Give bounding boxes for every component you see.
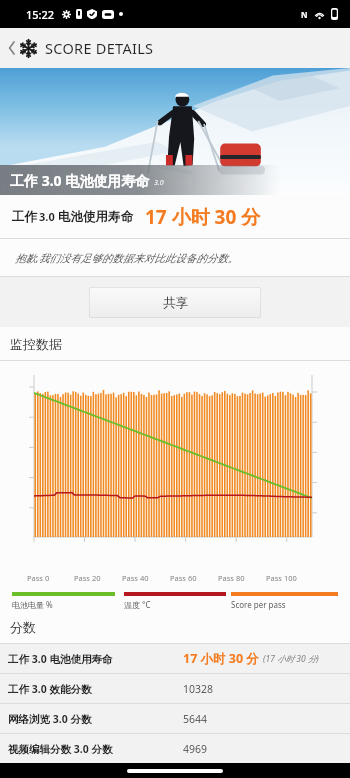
- staticText: Pass 100: [266, 573, 297, 583]
- staticText: Pass 60: [170, 573, 197, 583]
- staticText: 15:22: [26, 7, 55, 22]
- button[interactable]: Back: [4, 34, 158, 62]
- button[interactable]: 网络浏览 3.0 分数: [0, 704, 350, 733]
- staticText: 17 小时 30 分: [145, 204, 261, 230]
- staticText: (17 小时 30 分): [263, 653, 319, 665]
- staticText: 17 小时 30 分: [183, 650, 259, 667]
- button[interactable]: 共享: [89, 287, 261, 318]
- staticText: 工作 3.0 电池使用寿命: [8, 652, 183, 666]
- staticText: Pass 80: [218, 573, 245, 583]
- staticText: 工作 3.0 电池使用寿命: [10, 171, 150, 190]
- staticText: 工作 3.0 效能分数: [8, 682, 183, 696]
- staticText: Pass 20: [74, 573, 101, 583]
- staticText: 工作: [12, 209, 37, 225]
- staticText: 共享: [163, 295, 188, 311]
- staticText: 网络浏览 3.0 分数: [8, 712, 183, 726]
- staticText: 10328: [183, 682, 214, 696]
- staticText: SCORE DETAILS: [45, 38, 154, 58]
- button[interactable]: 工作 3.0 效能分数: [0, 674, 350, 703]
- staticText: 监控数据: [10, 336, 62, 352]
- staticText: 温度 °C: [124, 599, 151, 610]
- button[interactable]: 视频编辑分数 3.0 分数: [0, 734, 350, 763]
- staticText: 3.0: [39, 209, 55, 224]
- staticText: N: [301, 9, 308, 20]
- staticText: 分数: [10, 619, 36, 635]
- staticText: 5644: [183, 712, 208, 726]
- staticText: 抱歉,我们没有足够的数据来对比此设备的分数。: [15, 251, 239, 265]
- button[interactable]: 工作 3.0 电池使用寿命: [0, 644, 350, 673]
- staticText: 电池使用寿命: [58, 209, 133, 225]
- staticText: 视频编辑分数 3.0 分数: [8, 742, 183, 756]
- staticText: 电池电量 %: [12, 599, 53, 610]
- staticText: Pass 40: [122, 573, 149, 583]
- staticText: 4969: [183, 742, 208, 756]
- staticText: 3.0: [154, 178, 164, 188]
- staticText: Score per pass: [231, 599, 286, 610]
- staticText: Pass 0: [27, 573, 50, 583]
